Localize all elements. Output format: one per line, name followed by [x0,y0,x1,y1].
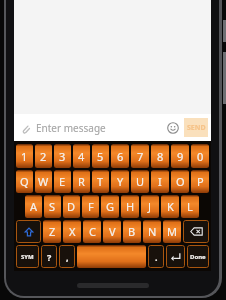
staticText: B [128,224,136,239]
button[interactable]: 8 [151,144,169,168]
button[interactable]: X [63,220,81,243]
button[interactable]: 0 [191,144,209,168]
button[interactable]: Attach [17,120,33,136]
button[interactable]: 5 [92,144,109,168]
staticText: 0 [197,149,204,164]
button[interactable]: Z [43,220,61,243]
staticText: W [38,174,49,189]
staticText: V [109,224,116,239]
staticText: L [187,199,193,214]
staticText: SYM [21,253,34,261]
staticText: A [30,199,38,214]
staticText: Y [117,174,124,189]
button[interactable]: 3 [54,144,71,168]
staticText: T [97,174,104,189]
button[interactable]: 6 [111,144,129,168]
staticText: 4 [78,149,85,164]
staticText: 1 [21,149,28,164]
staticText: 6 [117,149,124,164]
button[interactable]: Enter [166,245,185,268]
staticText: S [49,199,56,214]
staticText: J [148,199,152,214]
staticText: Q [20,174,29,189]
staticText: F [88,199,94,214]
staticText: K [167,199,174,214]
staticText: ? [47,251,52,263]
staticText: C [89,224,96,239]
staticText: Z [49,224,56,239]
staticText: 2 [40,149,47,164]
staticText: E [59,174,66,189]
button[interactable]: C [83,220,101,243]
button[interactable]: N [143,220,161,243]
button[interactable]: T [92,170,109,193]
button[interactable]: Shift [16,220,41,243]
button[interactable]: Y [111,170,129,193]
button[interactable]: J [141,195,159,218]
staticText: P [197,174,204,189]
staticText: I [158,174,162,189]
staticText: 7 [137,149,144,164]
staticText: R [78,174,85,189]
button[interactable]: Q [16,170,33,193]
button[interactable]: SEND [184,118,208,137]
button[interactable]: F [82,195,99,218]
button[interactable]: M [163,220,181,243]
button[interactable]: S [44,195,61,218]
staticText: U [136,174,145,189]
button[interactable]: Backspace [183,220,209,243]
staticText: , [66,251,69,263]
button[interactable]: 7 [131,144,149,168]
staticText: 5 [97,149,104,164]
button[interactable]: , [59,245,75,268]
button[interactable]: P [191,170,209,193]
button[interactable]: L [181,195,199,218]
staticText: D [67,199,76,214]
button[interactable]: A [25,195,42,218]
button[interactable]: W [35,170,52,193]
staticText: M [167,224,177,239]
staticText: X [69,224,76,239]
staticText: G [106,199,115,214]
staticText: 8 [157,149,164,164]
button[interactable]: K [161,195,179,218]
staticText: Done [190,253,206,261]
button[interactable] [77,245,146,268]
staticText: 3 [59,149,66,164]
button[interactable]: D [63,195,80,218]
button[interactable]: E [54,170,71,193]
button[interactable]: O [171,170,189,193]
staticText: 9 [177,149,184,164]
button[interactable]: 4 [73,144,90,168]
button[interactable]: 2 [35,144,52,168]
button[interactable]: Done [187,245,209,268]
button[interactable]: SYM [16,245,39,268]
button[interactable]: . [148,245,164,268]
staticText: H [126,199,135,214]
staticText: O [176,174,185,189]
button[interactable]: I [151,170,169,193]
staticText: . [155,251,158,263]
staticText: N [148,224,157,239]
button[interactable]: R [73,170,90,193]
staticText: SEND [187,123,206,133]
button[interactable]: H [121,195,139,218]
staticText: Enter message [36,121,106,135]
button[interactable]: U [131,170,149,193]
button[interactable]: G [101,195,119,218]
button[interactable]: B [123,220,141,243]
button[interactable]: ? [41,245,57,268]
button[interactable]: 9 [171,144,189,168]
button[interactable]: Emoji [164,119,182,137]
button[interactable]: V [103,220,121,243]
button[interactable]: 1 [16,144,33,168]
